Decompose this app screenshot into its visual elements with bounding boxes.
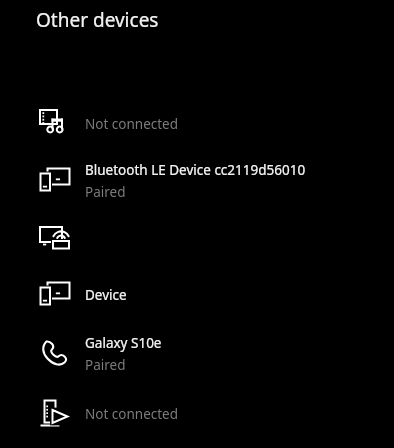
button[interactable]: Galaxy S10e [0,323,394,385]
staticText: Other devices [36,7,159,33]
button[interactable]: Cast device, not connected [0,385,394,442]
staticText: Bluetooth LE Device cc2119d56010 [85,161,306,179]
staticText: Paired [85,356,126,374]
staticText: Not connected [85,115,179,133]
button[interactable]: Device [0,266,394,323]
staticText: Galaxy S10e [85,334,162,352]
button[interactable]: Bluetooth LE Device cc2119d56010 [0,152,394,209]
staticText: Not connected [85,405,179,423]
button[interactable]: Media device, not connected [0,95,394,152]
button[interactable]: Wireless display [0,209,394,266]
staticText: Paired [85,183,126,201]
staticText: Device [85,286,127,304]
